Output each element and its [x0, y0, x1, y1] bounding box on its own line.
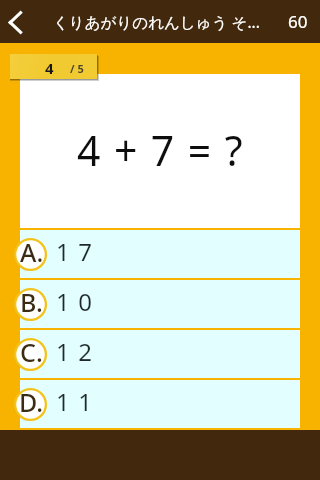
staticText: くりあがりのれんしゅう そ... [53, 11, 260, 32]
staticText: 1 0 [56, 285, 94, 318]
button[interactable]: 1 0 [0, 280, 320, 328]
button[interactable]: 1 2 [0, 330, 320, 378]
staticText: 4 [45, 58, 54, 78]
staticText: 1 7 [56, 235, 94, 268]
staticText: 1 2 [56, 335, 94, 368]
staticText: 60 [288, 10, 308, 33]
staticText: / 5 [70, 61, 84, 76]
staticText: B. [20, 285, 43, 318]
button[interactable]: Back [0, 0, 44, 43]
button[interactable]: 4 [10, 54, 97, 79]
staticText: C. [20, 335, 43, 368]
staticText: D. [19, 385, 44, 418]
staticText: 1 1 [56, 385, 94, 418]
button[interactable]: 1 1 [0, 380, 320, 428]
staticText: 4 + 7 = ? [77, 122, 244, 178]
button[interactable]: 1 7 [0, 230, 320, 278]
staticText: A. [20, 235, 44, 268]
